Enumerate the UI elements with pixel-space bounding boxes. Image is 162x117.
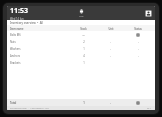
staticText: 4 xyxy=(83,54,85,58)
button[interactable]: Item name xyxy=(7,25,155,31)
button[interactable]: Bolts M6 xyxy=(7,31,155,38)
staticText: 1 xyxy=(83,47,85,51)
staticText: - xyxy=(110,47,111,51)
button[interactable]: Account xyxy=(144,9,153,18)
staticText: Status xyxy=(134,27,142,30)
staticText: Wed 14 Jun xyxy=(10,17,24,20)
staticText: - xyxy=(138,40,139,44)
staticText: LIVE xyxy=(79,15,84,18)
staticText: — xyxy=(82,33,85,37)
staticText: 1 xyxy=(83,61,85,65)
staticText: Washers xyxy=(10,47,21,51)
staticText: Synced just now · Last update 11:52 xyxy=(10,107,49,110)
staticText: 1 xyxy=(83,101,85,105)
staticText: Brackets xyxy=(10,61,21,65)
button[interactable]: Nuts xyxy=(7,38,155,45)
staticText: v2.1 xyxy=(147,107,152,110)
staticText: - xyxy=(110,101,111,105)
button[interactable]: Anchors xyxy=(7,52,155,59)
staticText: 11:53 xyxy=(10,6,28,16)
staticText: Unit xyxy=(108,27,114,30)
staticText: - xyxy=(138,47,139,51)
staticText: - xyxy=(138,54,139,58)
staticText: Stock xyxy=(80,27,87,30)
button[interactable]: Brackets xyxy=(7,59,155,66)
staticText: Nuts xyxy=(10,40,16,44)
staticText: Item name xyxy=(10,27,24,30)
staticText: Anchors xyxy=(10,54,20,58)
button[interactable]: App logo xyxy=(77,8,86,19)
button[interactable]: Washers xyxy=(7,45,155,52)
staticText: - xyxy=(110,54,111,58)
staticText: Bolts M6 xyxy=(10,33,21,37)
staticText: 2 xyxy=(83,40,85,44)
staticText: Inventory overview • All xyxy=(10,21,43,25)
button[interactable]: Total xyxy=(7,99,155,106)
staticText: - xyxy=(110,40,111,44)
staticText: Total xyxy=(10,101,17,105)
